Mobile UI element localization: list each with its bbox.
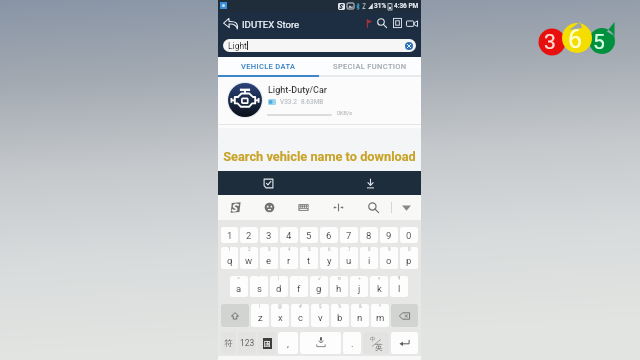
button[interactable]: My downloads [218,171,319,195]
staticText: · [298,276,300,281]
button[interactable]: | [270,276,288,297]
button[interactable]: √ [310,276,328,297]
button[interactable]: 4 [280,227,298,243]
button[interactable]: * [371,304,389,327]
button[interactable]: 0 [400,227,418,243]
staticText: 英 [375,342,383,352]
button[interactable]: emoji [252,195,286,220]
button[interactable]: & [351,304,369,327]
staticText: 6 [326,230,332,241]
button[interactable]: 9 [380,247,398,269]
staticText: 6 [568,25,583,54]
button[interactable]: 符 [221,332,236,354]
button[interactable]: More [392,195,421,220]
button[interactable]: 8 [360,227,378,243]
button[interactable]: 3 [260,227,278,243]
staticText: 4 [288,247,291,252]
staticText: 7 [346,230,352,241]
staticText: q [227,255,233,266]
button[interactable]: 9 [380,227,398,243]
button[interactable]: 5 [300,247,318,269]
staticText: % [338,304,342,309]
button[interactable]: 123 [238,332,256,354]
button[interactable]: Light [223,39,416,52]
staticText: w [245,255,253,266]
button[interactable]: Language [258,332,276,354]
button[interactable]: , [278,332,298,354]
staticText: 8.63MB [301,98,324,106]
staticText: 7 [348,247,351,252]
button[interactable]: 6 [320,227,338,243]
button[interactable]: 3 [260,247,278,269]
button[interactable]: ` [250,276,268,297]
button[interactable]: 8 [360,247,378,269]
button[interactable]: ~ [230,276,248,297]
staticText: k [377,283,382,294]
button[interactable]: Search [376,17,388,29]
staticText: IDUTEX Store [242,19,300,30]
staticText: 4:36 PM [394,2,419,10]
button[interactable]: 2 [240,247,258,269]
button[interactable]: 2 [240,227,258,243]
staticText: 31% [374,2,387,10]
staticText: d [276,283,282,294]
button[interactable]: π [330,276,348,297]
button[interactable]: Back [222,16,238,31]
button[interactable]: Download [319,171,421,195]
staticText: 3 [266,230,272,241]
staticText: VEHICLE DATA [241,62,296,71]
button[interactable]: ¶ [390,276,408,297]
button[interactable]: # [291,304,309,327]
button[interactable]: $ [311,304,329,327]
staticText: r [287,255,291,266]
button[interactable]: Enter [391,332,418,354]
button[interactable]: ÷ [350,276,368,297]
button[interactable]: Shift [221,304,249,327]
staticText: Light [228,41,247,51]
button[interactable]: cursor [321,195,356,220]
button[interactable]: SPECIAL FUNCTION [319,57,421,75]
button[interactable]: 6 [320,247,338,269]
staticText: b [337,312,343,323]
button[interactable]: Backspace [391,304,418,327]
staticText: V33.2 [280,98,297,106]
button[interactable]: 0 [400,247,418,269]
button[interactable]: . [343,332,361,354]
staticText: # [299,304,302,309]
button[interactable]: sogou [218,195,252,220]
staticText: v [318,312,323,323]
button[interactable]: ! [251,304,269,327]
staticText: 9 [388,247,391,252]
button[interactable]: 7 [340,227,358,243]
staticText: 123 [240,338,255,348]
staticText: . [351,338,354,349]
button[interactable]: 5 [300,227,318,243]
button[interactable]: 1 [221,227,238,243]
button[interactable]: Video [405,17,418,29]
button[interactable]: Light-Duty/Car [218,77,421,128]
button[interactable]: 7 [340,247,358,269]
staticText: ÷ [358,276,361,281]
button[interactable]: Feedback [364,18,375,29]
staticText: 5 [308,247,311,252]
staticText: g [316,283,322,294]
staticText: 5 [593,30,605,55]
button[interactable]: Downloads [391,17,403,29]
button[interactable]: 1 [221,247,238,269]
button[interactable]: VEHICLE DATA [218,57,319,75]
staticText: 2 [248,247,251,252]
button[interactable]: @ [271,304,289,327]
staticText: Search vehicle name to download [218,149,421,164]
button[interactable]: 4 [280,247,298,269]
button[interactable]: × [370,276,388,297]
staticText: 0 [406,230,412,241]
button[interactable]: % [331,304,349,327]
button[interactable]: Chinese / English [363,332,389,354]
staticText: 国 [264,339,271,348]
button[interactable]: search [356,195,391,220]
button[interactable]: Space [300,332,341,354]
staticText: √ [318,276,321,281]
button[interactable]: · [290,276,308,297]
staticText: a [236,283,242,294]
button[interactable]: kbd [286,195,321,220]
